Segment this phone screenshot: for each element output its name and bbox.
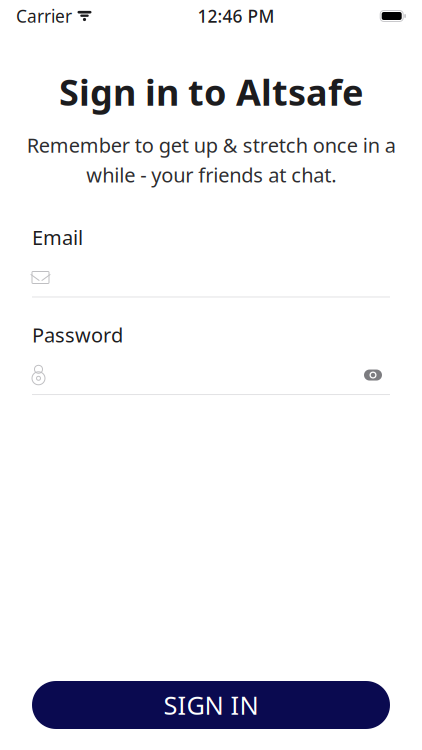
staticText: 12:46 PM — [198, 4, 275, 27]
staticText: SIGN IN — [163, 688, 258, 722]
staticText: Carrier — [16, 4, 72, 27]
staticText: Sign in to Altsafe — [59, 68, 363, 116]
button[interactable]: SIGN IN — [32, 681, 390, 729]
button[interactable]: Show password — [356, 361, 390, 389]
staticText: Password — [32, 321, 123, 348]
staticText: Email — [32, 224, 83, 250]
staticText: Remember to get up & stretch once in a w… — [26, 132, 395, 188]
